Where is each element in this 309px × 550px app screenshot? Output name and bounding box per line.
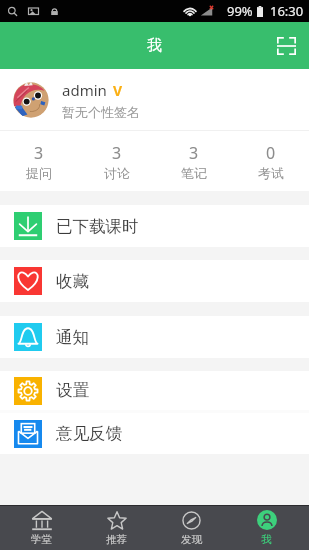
staticText: 3 [189,142,199,164]
staticText: 3 [34,142,44,164]
button[interactable]: 我 [229,506,304,550]
button[interactable]: 已下载课时 [0,205,309,247]
staticText: V [113,81,123,100]
button[interactable]: 学堂 [4,506,79,550]
button[interactable]: 3 [78,131,155,191]
staticText: 设置 [56,380,89,401]
staticText: 提问 [26,165,52,181]
staticText: 考试 [258,165,284,181]
button[interactable]: 0 [232,131,309,191]
button[interactable]: Scan QR code [266,26,306,66]
staticText: 我 [261,533,272,546]
staticText: 3 [112,142,122,164]
staticText: 发现 [181,533,202,546]
button[interactable]: 收藏 [0,260,309,302]
staticText: 笔记 [181,165,207,181]
staticText: 暂无个性签名 [62,104,140,120]
staticText: 16:30 [270,2,304,20]
button[interactable]: 推荐 [79,506,154,550]
staticText: 推荐 [106,533,127,546]
staticText: 我 [147,36,162,55]
button[interactable]: 通知 [0,316,309,358]
staticText: 0 [266,142,276,164]
button[interactable]: 意见反馈 [0,413,309,454]
button[interactable]: 设置 [0,371,309,410]
staticText: 讨论 [104,165,130,181]
staticText: 学堂 [31,533,52,546]
button[interactable]: admin [0,69,309,130]
staticText: 99% [227,2,253,20]
button[interactable]: 3 [0,131,78,191]
button[interactable]: 发现 [154,506,229,550]
staticText: 通知 [56,327,89,348]
staticText: admin [62,80,107,100]
staticText: 收藏 [56,271,89,292]
staticText: 已下载课时 [56,216,139,237]
staticText: 意见反馈 [56,423,122,444]
button[interactable]: 3 [155,131,232,191]
